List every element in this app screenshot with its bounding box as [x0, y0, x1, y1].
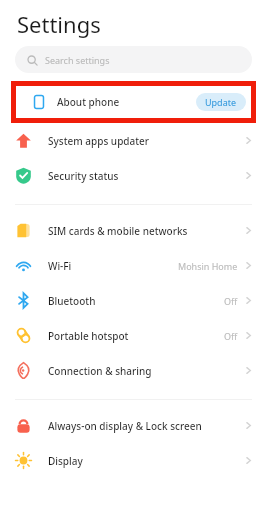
button[interactable]: Wi-Fi — [0, 248, 267, 283]
other: SIM cards & mobile networks — [15, 222, 32, 239]
button[interactable]: Connection & sharing — [0, 353, 267, 388]
button[interactable]: SIM cards & mobile networks — [0, 213, 267, 248]
other: Portable hotspot — [15, 327, 32, 344]
staticText: SIM cards & mobile networks — [48, 224, 188, 238]
staticText: Wi-Fi — [48, 259, 72, 273]
staticText: About phone — [57, 95, 120, 109]
button[interactable]: Search settings — [15, 46, 252, 73]
staticText: Off — [224, 330, 238, 342]
button[interactable]: Bluetooth — [0, 283, 267, 318]
staticText: Display — [48, 454, 83, 468]
button[interactable]: About phone — [11, 81, 256, 123]
button[interactable]: Update — [196, 93, 246, 111]
staticText: Connection & sharing — [48, 364, 152, 378]
other: Bluetooth — [15, 292, 32, 309]
staticText: System apps updater — [48, 134, 150, 148]
staticText: Search settings — [45, 54, 110, 66]
other: Wi-Fi — [15, 257, 32, 274]
staticText: Mohsin Home — [178, 260, 238, 272]
staticText: Always-on display & Lock screen — [48, 419, 202, 433]
button[interactable]: Display — [0, 443, 267, 478]
other: Connection & sharing — [15, 362, 32, 379]
staticText: Settings — [17, 9, 101, 39]
staticText: Update — [205, 96, 237, 108]
button[interactable]: System apps updater — [0, 123, 267, 158]
staticText: Off — [224, 295, 238, 307]
other: Security status — [15, 167, 32, 184]
button[interactable]: Portable hotspot — [0, 318, 267, 353]
other: System apps updater — [15, 132, 32, 149]
other: Always-on display & Lock screen — [15, 417, 32, 434]
button[interactable]: Security status — [0, 158, 267, 193]
other: Display — [15, 452, 32, 469]
button[interactable]: Always-on display & Lock screen — [0, 408, 267, 443]
staticText: Portable hotspot — [48, 329, 129, 343]
staticText: Security status — [48, 169, 119, 183]
staticText: Bluetooth — [48, 294, 96, 308]
